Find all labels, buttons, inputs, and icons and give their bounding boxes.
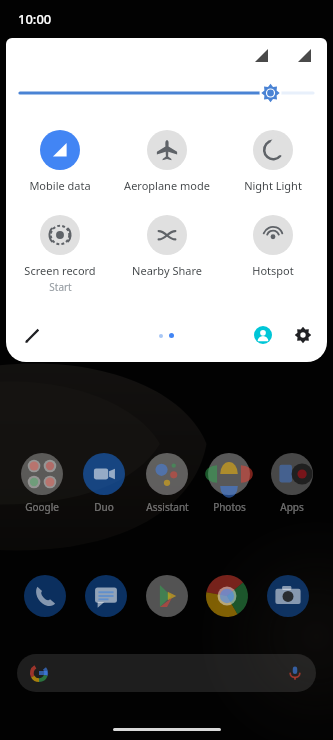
staticText: Night Light [244, 178, 302, 193]
button[interactable]: Hotspot [221, 213, 325, 280]
button[interactable]: Duo [75, 452, 133, 514]
staticText: Duo [94, 500, 114, 514]
button[interactable]: Chrome [203, 572, 251, 620]
button[interactable]: Assistant [138, 452, 196, 514]
staticText: Hotspot [252, 263, 294, 278]
button[interactable]: Camera [264, 572, 312, 620]
staticText: Google [25, 500, 59, 514]
staticText: Assistant [146, 500, 189, 514]
button[interactable]: Photos [200, 452, 258, 514]
staticText: Aeroplane mode [124, 178, 210, 193]
staticText: Apps [280, 500, 304, 514]
staticText: Start [49, 280, 72, 294]
button[interactable]: User account [247, 319, 279, 351]
staticText: Screen record [24, 263, 96, 278]
button[interactable]: Edit tiles [16, 319, 48, 351]
staticText: Nearby Share [132, 263, 202, 278]
button[interactable]: Brightness [20, 80, 313, 106]
staticText: Photos [213, 500, 246, 514]
button[interactable]: Search [17, 654, 316, 692]
staticText: 10:00 [18, 10, 52, 28]
button[interactable]: Aeroplane mode [115, 128, 219, 195]
button[interactable]: Google [13, 452, 71, 514]
button[interactable]: Screen record [8, 213, 112, 296]
button[interactable]: Night Light [221, 128, 325, 195]
button[interactable]: Apps [263, 452, 321, 514]
button[interactable]: Play Store [143, 572, 191, 620]
button[interactable]: Phone [21, 572, 69, 620]
button[interactable]: Settings [287, 319, 319, 351]
button[interactable]: Mobile data [8, 128, 112, 195]
button[interactable]: Nearby Share [115, 213, 219, 280]
button[interactable]: Messages [82, 572, 130, 620]
staticText: Mobile data [29, 178, 91, 193]
